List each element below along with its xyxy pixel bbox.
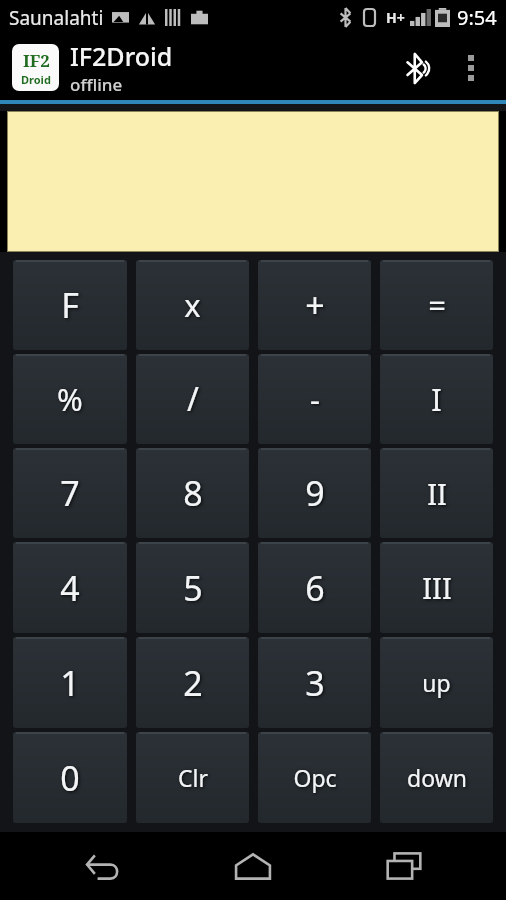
staticText: Droid xyxy=(21,72,51,87)
button[interactable]: 7 xyxy=(13,448,127,538)
staticText: - xyxy=(310,378,320,420)
button[interactable]: - xyxy=(258,354,371,444)
staticText: / xyxy=(187,377,199,421)
button[interactable]: Home xyxy=(205,832,301,900)
button[interactable]: 8 xyxy=(136,448,249,538)
staticText: 9:54 xyxy=(457,4,497,31)
staticText: 9 xyxy=(305,470,325,516)
button[interactable]: / xyxy=(136,354,249,444)
button[interactable]: II xyxy=(380,448,493,538)
button[interactable]: % xyxy=(13,354,127,444)
staticText: 6 xyxy=(305,565,325,611)
button[interactable]: 2 xyxy=(136,637,249,728)
button[interactable]: I xyxy=(380,354,493,444)
button[interactable]: Bluetooth xyxy=(394,41,448,95)
button[interactable]: down xyxy=(380,732,493,823)
staticText: Clr xyxy=(178,762,208,793)
button[interactable]: + xyxy=(258,260,371,350)
button[interactable]: 5 xyxy=(136,542,249,633)
staticText: II xyxy=(427,474,447,513)
staticText: IF2 xyxy=(23,49,50,72)
button[interactable]: Back xyxy=(55,832,151,900)
button[interactable]: 3 xyxy=(258,637,371,728)
staticText: + xyxy=(305,282,325,328)
button[interactable]: 4 xyxy=(13,542,127,633)
button[interactable]: up xyxy=(380,637,493,728)
staticText: F xyxy=(61,282,79,328)
staticText: I xyxy=(431,378,442,420)
button[interactable]: Clr xyxy=(136,732,249,823)
staticText: 2 xyxy=(183,660,203,706)
button[interactable]: 0 xyxy=(13,732,127,823)
button[interactable]: = xyxy=(380,260,493,350)
staticText: III xyxy=(422,568,452,607)
staticText: 1 xyxy=(60,660,80,706)
staticText: 5 xyxy=(183,565,203,611)
staticText: offline xyxy=(70,73,123,96)
staticText: 8 xyxy=(183,470,203,516)
button[interactable]: 9 xyxy=(258,448,371,538)
button[interactable]: Opc xyxy=(258,732,371,823)
button[interactable]: Recent apps xyxy=(356,832,452,900)
staticText: Saunalahti xyxy=(9,5,104,31)
button[interactable]: III xyxy=(380,542,493,633)
staticText: % xyxy=(57,378,83,420)
staticText: H+ xyxy=(386,8,405,27)
staticText: 3 xyxy=(305,660,325,706)
staticText: Opc xyxy=(293,762,337,793)
staticText: 0 xyxy=(60,755,80,801)
button[interactable]: More options xyxy=(448,45,494,91)
staticText: x xyxy=(184,284,201,326)
button[interactable]: x xyxy=(136,260,249,350)
staticText: up xyxy=(422,667,451,698)
button[interactable]: 1 xyxy=(13,637,127,728)
button[interactable]: 6 xyxy=(258,542,371,633)
button[interactable]: F xyxy=(13,260,127,350)
staticText: down xyxy=(407,762,467,793)
staticText: 4 xyxy=(60,565,80,611)
staticText: = xyxy=(428,284,446,326)
staticText: 7 xyxy=(60,470,80,516)
staticText: IF2Droid xyxy=(70,39,173,73)
